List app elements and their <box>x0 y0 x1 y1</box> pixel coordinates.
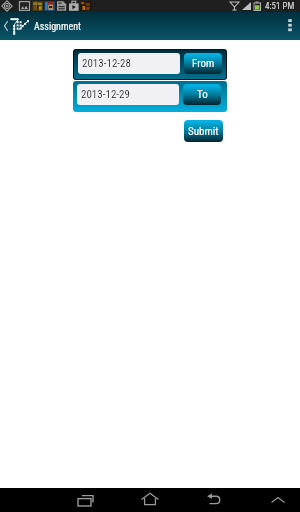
button[interactable]: Back <box>189 488 239 512</box>
button[interactable]: 2013-12-28 <box>78 53 180 74</box>
staticText: 4:51 PM <box>265 1 295 12</box>
button[interactable]: Home <box>125 488 175 512</box>
button[interactable]: Hide navigation <box>255 488 300 512</box>
button[interactable]: Recent apps <box>60 488 110 512</box>
staticText: 2013-12-28 <box>82 57 131 70</box>
staticText: Submit <box>188 125 219 138</box>
staticText: Assignment <box>34 21 81 33</box>
button[interactable]: More options <box>280 12 300 40</box>
button[interactable]: From <box>184 53 222 74</box>
staticText: 2013-12-29 <box>81 88 130 101</box>
staticText: To <box>197 88 208 101</box>
button[interactable]: Submit <box>184 120 223 142</box>
button[interactable]: To <box>183 84 221 105</box>
button[interactable]: Navigate up <box>0 12 81 40</box>
button[interactable]: 2013-12-29 <box>77 84 179 105</box>
staticText: From <box>192 57 215 70</box>
